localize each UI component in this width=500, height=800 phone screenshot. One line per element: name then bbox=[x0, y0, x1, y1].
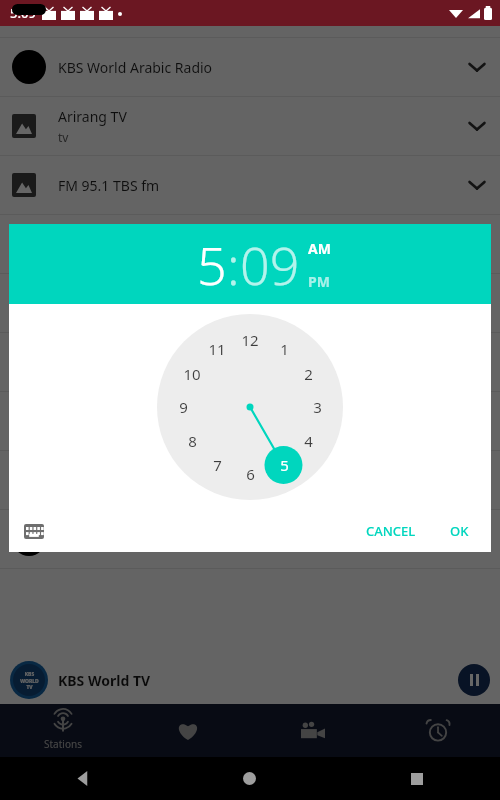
staticText: Stations bbox=[44, 737, 82, 751]
staticText: KBS WORLD TV bbox=[20, 671, 39, 690]
button[interactable]: Home bbox=[166, 757, 333, 800]
button[interactable]: OK bbox=[438, 514, 481, 548]
staticText: 1 bbox=[280, 339, 289, 359]
staticText: tv bbox=[58, 129, 69, 145]
button[interactable]: FM 95.1 TBS fm bbox=[0, 156, 500, 214]
staticText: CANCEL bbox=[366, 522, 416, 540]
button[interactable]: 09 bbox=[240, 229, 300, 300]
button[interactable]: Recordings bbox=[250, 704, 375, 757]
staticText: Arirang TV bbox=[58, 107, 127, 126]
staticText: 9 bbox=[179, 397, 188, 417]
button[interactable]: KBS World Arabic Radio bbox=[0, 38, 500, 96]
button[interactable] bbox=[0, 274, 500, 332]
staticText: 3 bbox=[313, 397, 322, 417]
button[interactable]: Arirang TV bbox=[0, 97, 500, 155]
staticText: 12 bbox=[241, 330, 259, 350]
button[interactable] bbox=[0, 215, 500, 273]
staticText: FM 95.1 TBS fm bbox=[58, 176, 160, 195]
staticText: 2 bbox=[304, 364, 313, 384]
staticText: 5 bbox=[280, 455, 289, 475]
button[interactable]: Alarms bbox=[375, 704, 500, 757]
button[interactable]: CANCEL bbox=[354, 514, 428, 548]
button[interactable]: SBS Power FM bbox=[0, 451, 500, 509]
staticText: : bbox=[227, 229, 240, 300]
staticText: 10 bbox=[183, 364, 201, 384]
staticText: 7 bbox=[213, 455, 222, 475]
staticText: 11 bbox=[208, 339, 226, 359]
button[interactable]: Favorites bbox=[125, 704, 250, 757]
button[interactable] bbox=[0, 510, 500, 568]
button[interactable]: Stations bbox=[0, 704, 125, 757]
button[interactable] bbox=[0, 392, 500, 450]
button[interactable]: PM bbox=[308, 272, 330, 291]
staticText: OK bbox=[450, 522, 469, 540]
button[interactable]: AM bbox=[308, 239, 331, 258]
button[interactable]: 5 bbox=[197, 229, 227, 300]
button[interactable]: Recents bbox=[333, 757, 500, 800]
button[interactable]: Switch to text input bbox=[17, 514, 51, 548]
button[interactable]: KBS WORLD TV bbox=[0, 656, 500, 704]
button[interactable] bbox=[0, 333, 500, 391]
staticText: 8 bbox=[188, 431, 197, 451]
staticText: KBS World Arabic Radio bbox=[58, 58, 213, 77]
staticText: 4 bbox=[304, 431, 313, 451]
staticText: KBS World TV bbox=[58, 671, 458, 690]
staticText: 6 bbox=[246, 464, 255, 484]
staticText: 5:09 bbox=[10, 4, 36, 22]
button[interactable]: Back bbox=[0, 757, 166, 800]
button[interactable]: Pause bbox=[458, 664, 490, 696]
